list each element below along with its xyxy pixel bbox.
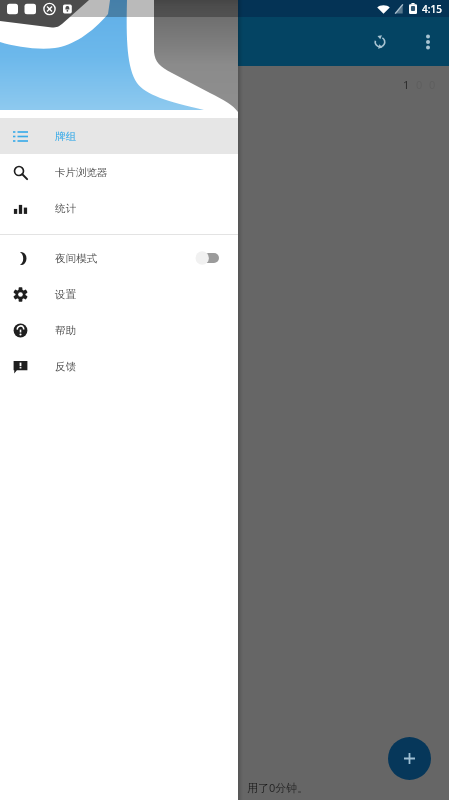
- button[interactable]: 帮助: [0, 312, 238, 348]
- button[interactable]: 反馈: [0, 348, 238, 384]
- staticText: 卡片浏览器: [55, 166, 108, 179]
- staticText: 牌组: [55, 130, 76, 143]
- button[interactable]: 统计: [0, 190, 238, 226]
- staticText: 4:15: [422, 2, 442, 16]
- staticText: 夜间模式: [55, 252, 97, 265]
- staticText: 1: [403, 77, 410, 92]
- staticText: 用了0分钟。: [247, 780, 309, 795]
- button[interactable]: 牌组: [0, 118, 238, 154]
- button[interactable]: 卡片浏览器: [0, 154, 238, 190]
- staticText: 统计: [55, 202, 76, 215]
- staticText: 反馈: [55, 360, 76, 373]
- button[interactable]: 设置: [0, 276, 238, 312]
- button[interactable]: 夜间模式: [0, 240, 238, 276]
- button[interactable]: More options: [411, 25, 445, 59]
- button[interactable]: Add deck: [388, 737, 431, 780]
- staticText: 设置: [55, 288, 76, 301]
- button[interactable]: Sync: [360, 22, 400, 62]
- staticText: 帮助: [55, 324, 76, 337]
